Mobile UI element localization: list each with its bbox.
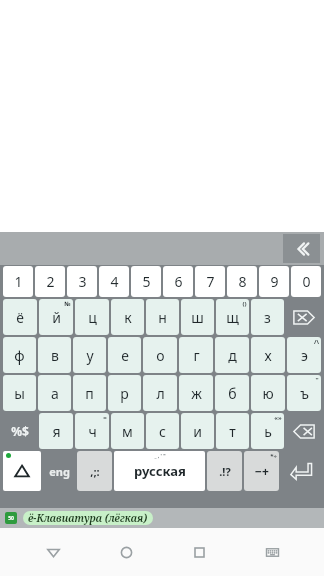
button[interactable]: Recents — [182, 535, 216, 569]
staticText: д — [228, 346, 237, 365]
button[interactable]: д — [215, 337, 249, 373]
button[interactable]: л — [143, 375, 177, 411]
button[interactable]: ш — [181, 299, 214, 335]
button[interactable]: в — [38, 337, 71, 373]
button[interactable]: я — [39, 413, 73, 449]
staticText: 0 — [302, 272, 311, 291]
staticText: е — [121, 346, 129, 365]
button[interactable]: ц — [75, 299, 109, 335]
button[interactable]: ъ — [287, 375, 321, 411]
staticText: «» — [274, 414, 282, 422]
staticText: = — [103, 414, 107, 422]
button[interactable]: Hide keyboard — [283, 234, 320, 263]
staticText: ,;: — [90, 464, 100, 479]
button[interactable]: и — [181, 413, 214, 449]
button[interactable]: п — [73, 375, 106, 411]
staticText: э — [301, 346, 308, 365]
button[interactable]: з — [251, 299, 284, 335]
button[interactable]: э — [287, 337, 321, 373]
button[interactable]: щ — [216, 299, 249, 335]
staticText: () — [242, 300, 247, 308]
staticText: о — [156, 346, 165, 365]
button[interactable]: г — [179, 337, 213, 373]
button[interactable]: %$ — [2, 412, 38, 450]
button[interactable]: ф — [3, 337, 36, 373]
staticText: ш — [191, 308, 204, 327]
staticText: '' — [315, 376, 319, 384]
button[interactable]: ю — [251, 375, 285, 411]
button[interactable]: 7 — [195, 266, 225, 297]
staticText: 9 — [270, 272, 279, 291]
staticText: ё-Клавиатура (лёгкая) — [28, 511, 148, 525]
button[interactable]: ы — [3, 375, 36, 411]
staticText: в — [51, 346, 59, 365]
button[interactable]: 6 — [163, 266, 193, 297]
button[interactable]: eng — [42, 450, 76, 492]
button[interactable]: н — [146, 299, 179, 335]
button[interactable]: к — [111, 299, 144, 335]
button[interactable]: й — [39, 299, 73, 335]
staticText: 3 — [78, 272, 87, 291]
staticText: м — [122, 422, 133, 441]
staticText: г — [193, 346, 200, 365]
staticText: ъ — [300, 384, 309, 403]
staticText: й — [52, 308, 61, 327]
staticText: № — [64, 300, 71, 308]
button[interactable]: а — [38, 375, 71, 411]
staticText: х — [264, 346, 272, 365]
staticText: щ — [226, 308, 239, 327]
staticText: з — [264, 308, 271, 327]
button[interactable]: 0 — [291, 266, 321, 297]
button[interactable]: р — [108, 375, 141, 411]
button[interactable]: 3 — [67, 266, 97, 297]
staticText: ф — [14, 346, 25, 365]
button[interactable]: м — [111, 413, 144, 449]
staticText: русская — [134, 462, 186, 480]
button[interactable]: .!? — [207, 451, 242, 491]
button[interactable]: 5 — [131, 266, 161, 297]
button[interactable]: Home — [109, 535, 143, 569]
staticText: ь — [264, 422, 272, 441]
button[interactable]: Shift — [3, 451, 41, 491]
button[interactable]: 4 — [99, 266, 129, 297]
button[interactable]: 8 — [227, 266, 257, 297]
button[interactable]: ж — [179, 375, 213, 411]
button[interactable]: 9 — [259, 266, 289, 297]
button[interactable]: Switch keyboard — [255, 535, 289, 569]
staticText: у — [86, 346, 94, 365]
staticText: %$ — [11, 423, 29, 439]
button[interactable]: Back — [36, 535, 70, 569]
staticText: к — [124, 308, 132, 327]
button[interactable]: Backspace — [285, 412, 322, 450]
staticText: 6 — [174, 272, 183, 291]
button[interactable]: ё — [3, 299, 37, 335]
staticText: б — [228, 384, 237, 403]
button[interactable]: 2 — [35, 266, 65, 297]
staticText: ю — [262, 384, 274, 403]
staticText: п — [85, 384, 94, 403]
staticText: 7 — [206, 272, 215, 291]
staticText: ы — [14, 384, 25, 403]
button[interactable]: Enter — [280, 450, 322, 492]
button[interactable]: Delete forward — [285, 298, 322, 336]
button[interactable]: ч — [75, 413, 109, 449]
button[interactable]: с — [146, 413, 179, 449]
button[interactable]: е — [108, 337, 141, 373]
staticText: 8 — [238, 272, 247, 291]
button[interactable]: ь — [251, 413, 284, 449]
button[interactable]: у — [73, 337, 106, 373]
staticText: /\ — [314, 338, 319, 346]
button[interactable]: х — [251, 337, 285, 373]
button[interactable]: б — [215, 375, 249, 411]
button[interactable]: о — [143, 337, 177, 373]
staticText: ч — [88, 422, 97, 441]
button[interactable]: ,;: — [77, 451, 112, 491]
button[interactable]: т — [216, 413, 249, 449]
staticText: ц — [88, 308, 97, 327]
button[interactable]: −+ — [244, 451, 279, 491]
button[interactable]: русская — [114, 451, 205, 491]
staticText: и — [193, 422, 202, 441]
button[interactable]: 1 — [3, 266, 33, 297]
staticText: 4 — [110, 272, 119, 291]
staticText: л — [156, 384, 165, 403]
